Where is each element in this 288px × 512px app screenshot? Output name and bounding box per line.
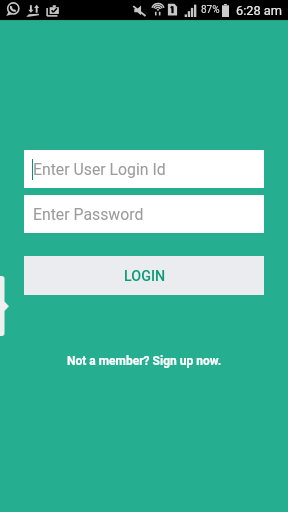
button[interactable]: Not a member? Sign up now. [67, 354, 222, 368]
button[interactable]: LOGIN [24, 256, 264, 295]
staticText: LOGIN [124, 268, 166, 285]
staticText: 6:28 am [236, 3, 283, 18]
staticText: Enter User Login Id [33, 160, 166, 179]
button[interactable]: Enter User Login Id [24, 150, 264, 188]
staticText: 87% [201, 4, 220, 16]
staticText: Enter Password [33, 205, 144, 224]
button[interactable]: Enter Password [24, 195, 264, 233]
button[interactable]: Open navigation drawer [0, 276, 9, 336]
